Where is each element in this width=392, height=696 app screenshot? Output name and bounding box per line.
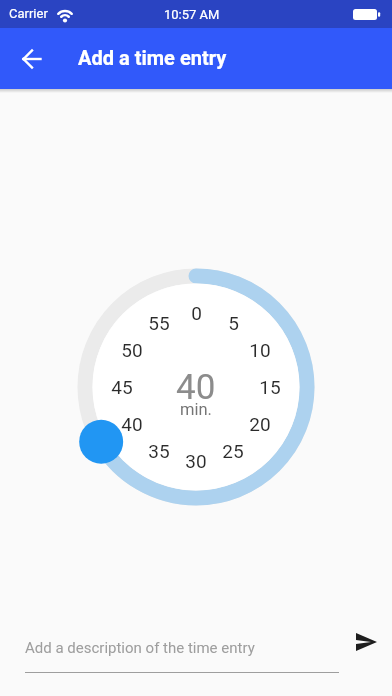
- button[interactable]: [342, 618, 390, 666]
- staticText: Add a time entry: [78, 46, 227, 69]
- button[interactable]: Add a description of the time entry: [0, 622, 392, 672]
- staticText: Carrier: [9, 6, 48, 21]
- staticText: 20: [249, 413, 271, 435]
- staticText: 50: [121, 339, 143, 361]
- staticText: 0: [191, 302, 202, 324]
- staticText: 30: [185, 450, 207, 472]
- staticText: 40: [176, 367, 216, 408]
- button[interactable]: [14, 39, 54, 79]
- staticText: 25: [222, 440, 244, 462]
- staticText: 45: [111, 376, 133, 398]
- button[interactable]: 0: [66, 257, 326, 517]
- staticText: 35: [148, 440, 170, 462]
- staticText: 15: [259, 376, 281, 398]
- staticText: Add a description of the time entry: [25, 639, 255, 657]
- staticText: 55: [148, 312, 170, 334]
- staticText: 5: [228, 312, 239, 334]
- staticText: 10: [249, 339, 271, 361]
- staticText: 10:57 AM: [164, 7, 220, 22]
- staticText: min.: [180, 400, 212, 419]
- staticText: 40: [121, 413, 143, 435]
